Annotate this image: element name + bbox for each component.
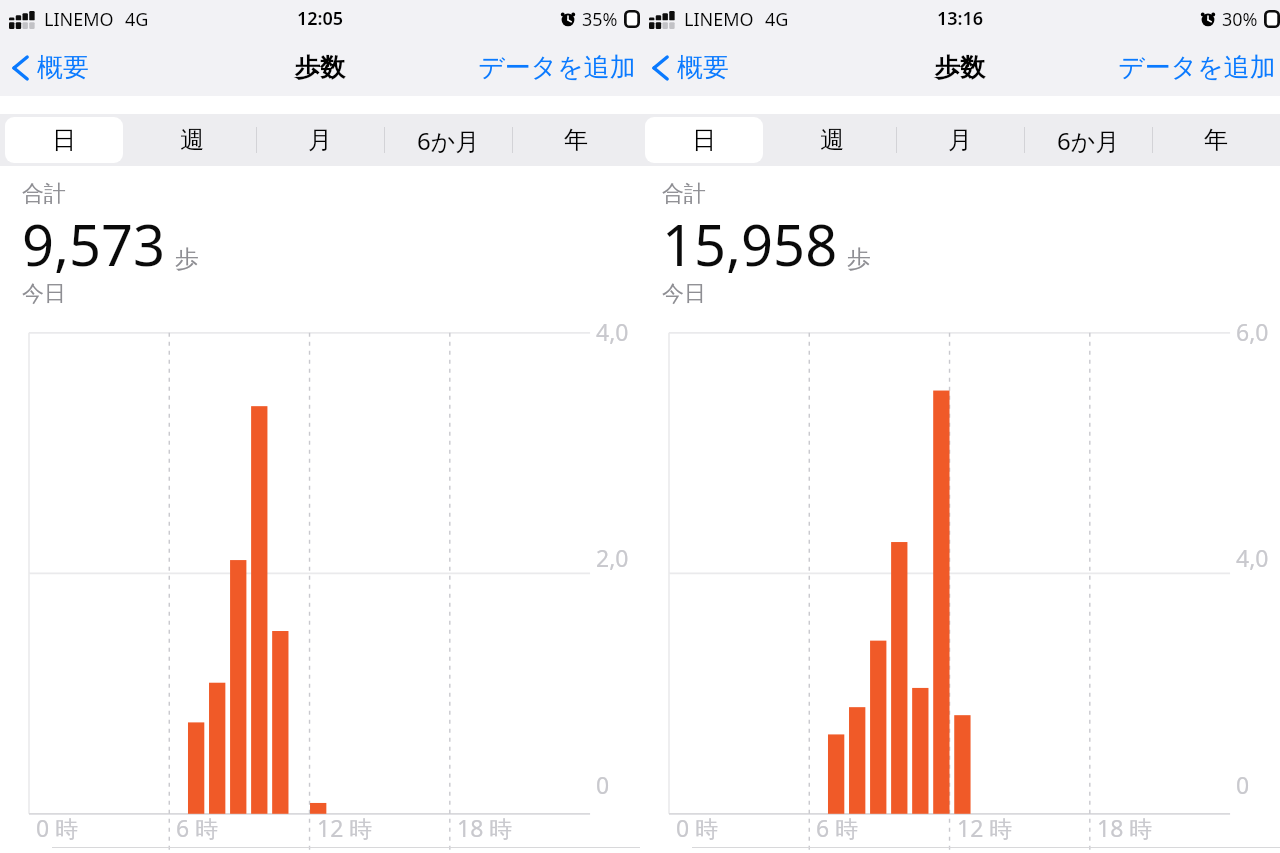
staticText: 概要 bbox=[677, 51, 729, 84]
staticText: 0 時 bbox=[676, 812, 719, 843]
staticText: 4G bbox=[765, 7, 789, 32]
staticText: 年 bbox=[1204, 125, 1228, 155]
staticText: 18 時 bbox=[457, 812, 513, 843]
staticText: 4,0 bbox=[596, 316, 629, 347]
other: Back bbox=[652, 54, 668, 82]
staticText: 2,0 bbox=[596, 542, 629, 573]
staticText: 12 時 bbox=[317, 812, 373, 843]
button[interactable]: 日 bbox=[640, 114, 768, 166]
staticText: 6か月 bbox=[417, 124, 480, 157]
staticText: LINEMO bbox=[44, 7, 114, 32]
staticText: 合計 bbox=[22, 180, 66, 208]
staticText: 9,573 bbox=[22, 206, 166, 282]
staticText: 月 bbox=[308, 125, 332, 155]
staticText: 今日 bbox=[22, 280, 66, 308]
staticText: 6 時 bbox=[816, 812, 859, 843]
staticText: 35% bbox=[582, 7, 618, 32]
staticText: 日 bbox=[52, 125, 76, 155]
staticText: 6 時 bbox=[176, 812, 219, 843]
button[interactable]: 年 bbox=[512, 114, 640, 166]
staticText: 歩数 bbox=[935, 52, 985, 83]
staticText: 4,0 bbox=[1236, 542, 1269, 573]
staticText: 歩 bbox=[175, 244, 199, 274]
staticText: データを追加 bbox=[1118, 51, 1276, 84]
button[interactable]: 週 bbox=[768, 114, 896, 166]
button[interactable]: 6か月 bbox=[384, 114, 512, 166]
staticText: LINEMO bbox=[684, 7, 754, 32]
staticText: 合計 bbox=[662, 180, 706, 208]
button[interactable]: 年 bbox=[1152, 114, 1280, 166]
button[interactable]: データを追加 bbox=[1114, 43, 1280, 92]
staticText: 4G bbox=[125, 7, 149, 32]
staticText: 0 bbox=[596, 769, 610, 800]
staticText: 週 bbox=[820, 125, 844, 155]
staticText: 週 bbox=[180, 125, 204, 155]
other: Back bbox=[12, 54, 28, 82]
button[interactable]: 6か月 bbox=[1024, 114, 1152, 166]
staticText: 13:16 bbox=[937, 6, 984, 31]
staticText: 0 時 bbox=[36, 812, 79, 843]
button[interactable]: 日 bbox=[0, 114, 128, 166]
staticText: 年 bbox=[564, 125, 588, 155]
button[interactable]: 週 bbox=[128, 114, 256, 166]
button[interactable]: 月 bbox=[896, 114, 1024, 166]
staticText: 日 bbox=[692, 125, 716, 155]
staticText: 歩 bbox=[847, 244, 871, 274]
staticText: データを追加 bbox=[478, 51, 636, 84]
staticText: 12:05 bbox=[297, 6, 344, 31]
button[interactable]: Back bbox=[640, 45, 739, 90]
staticText: 今日 bbox=[662, 280, 706, 308]
staticText: 月 bbox=[948, 125, 972, 155]
button[interactable]: データを追加 bbox=[474, 43, 640, 92]
staticText: 6か月 bbox=[1057, 124, 1120, 157]
staticText: 0 bbox=[1236, 769, 1250, 800]
staticText: 18 時 bbox=[1097, 812, 1153, 843]
staticText: 30% bbox=[1222, 7, 1258, 32]
button[interactable]: Back bbox=[0, 45, 99, 90]
staticText: 6,0 bbox=[1236, 316, 1269, 347]
staticText: 12 時 bbox=[957, 812, 1013, 843]
staticText: 歩数 bbox=[295, 52, 345, 83]
button[interactable]: 月 bbox=[256, 114, 384, 166]
staticText: 概要 bbox=[37, 51, 89, 84]
staticText: 15,958 bbox=[662, 206, 838, 282]
